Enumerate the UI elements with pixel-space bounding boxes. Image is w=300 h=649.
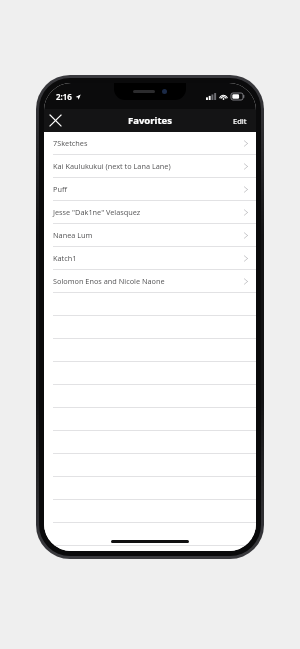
button[interactable]: Katch1 xyxy=(44,247,256,270)
button[interactable]: Jesse "Dak1ne" Velasquez xyxy=(44,201,256,224)
staticText: 7Sketches xyxy=(53,138,244,148)
button[interactable]: Solomon Enos and Nicole Naone xyxy=(44,270,256,293)
staticText: Nanea Lum xyxy=(53,230,244,240)
button[interactable]: Edit xyxy=(224,109,256,132)
staticText: Jesse "Dak1ne" Velasquez xyxy=(53,207,244,217)
staticText: Puff xyxy=(53,184,244,194)
staticText: Katch1 xyxy=(53,253,244,263)
staticText: Kai Kaulukukui (next to Lana Lane) xyxy=(53,161,244,171)
button[interactable]: 7Sketches xyxy=(44,132,256,155)
button[interactable]: Puff xyxy=(44,178,256,201)
staticText: Favorites xyxy=(128,114,172,127)
button[interactable]: Kai Kaulukukui (next to Lana Lane) xyxy=(44,155,256,178)
button[interactable]: Close xyxy=(44,109,67,132)
staticText: Edit xyxy=(233,116,247,126)
staticText: 2:16 xyxy=(56,91,72,102)
staticText: Solomon Enos and Nicole Naone xyxy=(53,276,244,286)
button[interactable]: Nanea Lum xyxy=(44,224,256,247)
